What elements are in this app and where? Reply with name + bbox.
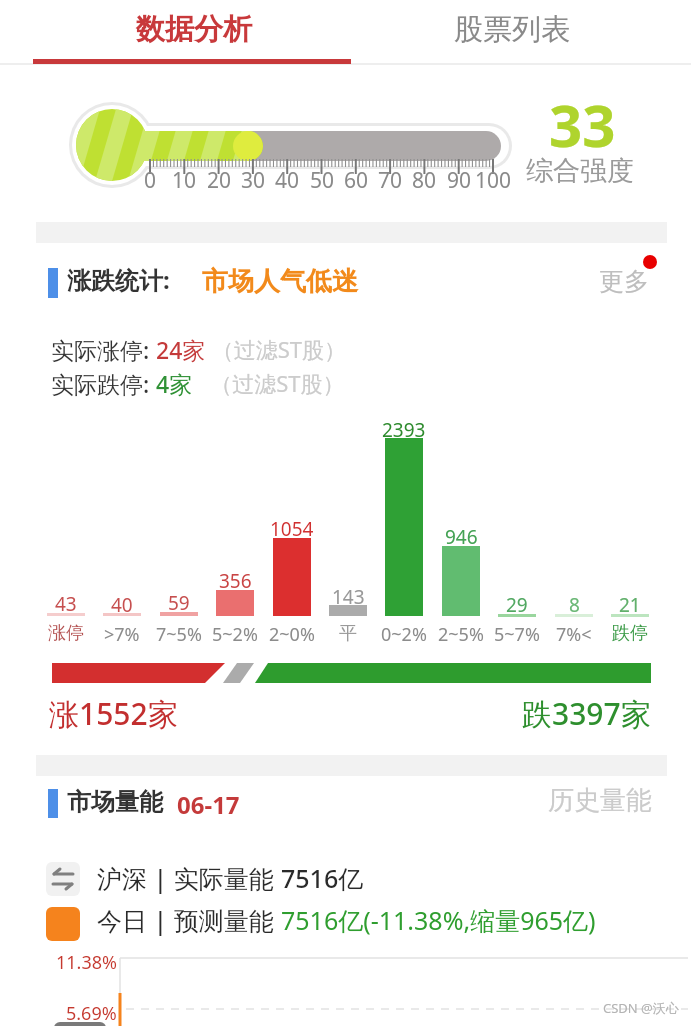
- staticText: 24家: [156, 334, 206, 365]
- staticText: 60: [344, 166, 369, 195]
- staticText: 市场人气低迷: [202, 265, 358, 298]
- staticText: 更多: [599, 266, 649, 297]
- staticText: 43: [55, 591, 77, 617]
- staticText: 跌3397家: [522, 693, 651, 734]
- staticText: 涨跌统计:: [67, 263, 170, 296]
- staticText: 7%<: [556, 622, 592, 647]
- staticText: CSDN @沃心: [603, 999, 679, 1017]
- staticText: 10: [172, 166, 197, 195]
- staticText: 40: [275, 166, 300, 195]
- button[interactable]: 今日 | 预测量能: [97, 903, 596, 937]
- staticText: 90: [447, 166, 472, 195]
- staticText: 30: [241, 166, 266, 195]
- button[interactable]: 历史量能: [520, 778, 652, 822]
- staticText: 今日 | 预测量能: [97, 903, 281, 937]
- staticText: 综合强度: [526, 154, 634, 188]
- staticText: 29: [506, 592, 528, 618]
- staticText: 涨停: [48, 622, 84, 645]
- button[interactable]: [560, 250, 670, 300]
- staticText: 市场量能: [67, 787, 163, 817]
- staticText: 06-17: [177, 788, 240, 821]
- staticText: 1054: [270, 516, 314, 542]
- staticText: 股票列表: [454, 11, 570, 48]
- staticText: >7%: [104, 622, 140, 647]
- staticText: 143: [332, 584, 365, 610]
- staticText: （过滤ST股）: [193, 368, 345, 398]
- staticText: 21: [619, 592, 641, 618]
- staticText: 59: [168, 590, 190, 616]
- staticText: 沪深 | 实际量能: [97, 861, 281, 895]
- staticText: 40: [111, 592, 133, 618]
- staticText: 946: [445, 524, 478, 550]
- staticText: 跌停: [612, 622, 648, 645]
- button[interactable]: 沪深 | 实际量能: [97, 861, 364, 895]
- staticText: 20: [207, 166, 232, 195]
- staticText: 历史量能: [548, 784, 652, 817]
- staticText: 11.38%: [56, 950, 117, 975]
- staticText: 7516亿: [281, 861, 364, 895]
- staticText: 数据分析: [136, 11, 252, 48]
- staticText: 80: [412, 166, 437, 195]
- staticText: （过滤ST股）: [206, 334, 347, 364]
- staticText: 8: [569, 592, 580, 618]
- staticText: 50: [310, 166, 335, 195]
- staticText: 0: [144, 166, 157, 195]
- staticText: 2~5%: [438, 622, 484, 647]
- staticText: 33: [549, 85, 616, 164]
- staticText: 2393: [382, 417, 426, 443]
- staticText: 5.69%: [66, 1001, 117, 1026]
- staticText: 4家: [156, 368, 193, 399]
- button[interactable]: 股票列表: [353, 0, 671, 59]
- staticText: 实际跌停:: [51, 368, 156, 399]
- staticText: 356: [219, 568, 252, 594]
- staticText: 实际涨停:: [51, 334, 156, 365]
- staticText: 100: [475, 166, 512, 195]
- staticText: 7~5%: [156, 622, 202, 647]
- staticText: 5~7%: [494, 622, 540, 647]
- staticText: 平: [339, 622, 357, 645]
- staticText: 2~0%: [269, 622, 315, 647]
- staticText: 5~2%: [212, 622, 258, 647]
- staticText: 70: [378, 166, 403, 195]
- staticText: 7516亿(-11.38%,缩量965亿): [281, 903, 596, 937]
- staticText: 0~2%: [381, 622, 427, 647]
- button[interactable]: 数据分析: [35, 0, 353, 59]
- staticText: 涨1552家: [49, 693, 178, 734]
